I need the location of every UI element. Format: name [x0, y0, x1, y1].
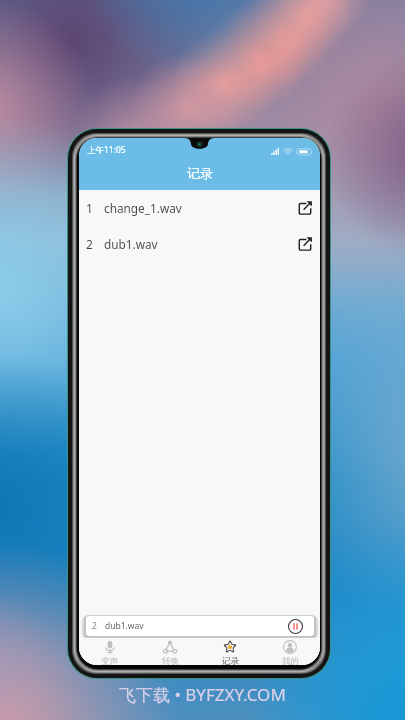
staticText: 2: [86, 236, 93, 252]
button[interactable]: 2: [86, 616, 314, 636]
staticText: 我的: [282, 656, 299, 665]
button[interactable]: 变声: [79, 638, 140, 665]
button[interactable]: 记录: [200, 638, 260, 665]
button[interactable]: 转换: [140, 638, 200, 665]
staticText: 上午11:05: [87, 144, 126, 156]
staticText: change_1.wav: [104, 200, 182, 216]
button[interactable]: Export: [296, 199, 314, 217]
staticText: 记录: [222, 656, 239, 665]
staticText: 记录: [187, 165, 213, 181]
staticText: dub1.wav: [105, 620, 144, 632]
staticText: 转换: [162, 656, 179, 665]
staticText: 飞下载 • BYFZXY.COM: [119, 683, 286, 706]
button[interactable]: 我的: [260, 638, 320, 665]
staticText: dub1.wav: [104, 236, 158, 252]
button[interactable]: Pause: [288, 619, 303, 634]
button[interactable]: 1: [79, 190, 320, 226]
button[interactable]: 2: [79, 226, 320, 262]
staticText: 1: [86, 200, 93, 216]
staticText: 变声: [101, 656, 118, 665]
staticText: 2: [92, 620, 97, 632]
button[interactable]: Export: [296, 235, 314, 253]
